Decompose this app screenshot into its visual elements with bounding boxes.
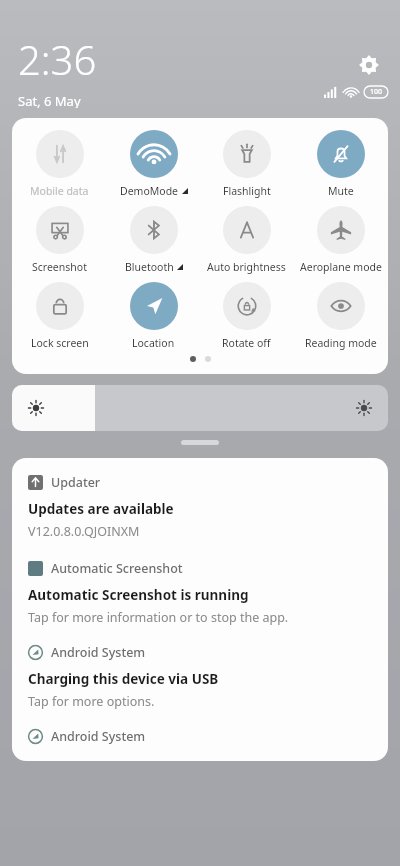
- button[interactable]: Reading mode: [295, 282, 386, 350]
- staticText: V12.0.8.0.QJOINXM: [28, 523, 140, 540]
- button[interactable]: Aeroplane mode: [295, 206, 386, 274]
- staticText: Mute: [328, 184, 354, 198]
- button[interactable]: Bluetooth: [108, 206, 199, 274]
- staticText: DemoMode: [120, 184, 179, 198]
- staticText: Location: [132, 336, 175, 350]
- button[interactable]: Auto brightness: [201, 206, 292, 274]
- button[interactable]: Mobile data: [14, 130, 105, 198]
- staticText: Lock screen: [31, 336, 89, 350]
- staticText: Automatic Screenshot is running: [28, 586, 249, 604]
- staticText: Sat, 6 May: [18, 92, 81, 108]
- button[interactable]: Rotate off: [201, 282, 292, 350]
- button[interactable]: Location: [108, 282, 199, 350]
- button[interactable]: DemoMode: [108, 130, 199, 198]
- staticText: Automatic Screenshot: [51, 560, 183, 577]
- button[interactable]: Flashlight: [201, 130, 292, 198]
- staticText: Bluetooth: [125, 260, 174, 274]
- button[interactable]: Mute: [295, 130, 386, 198]
- button[interactable]: Automatic Screenshot: [28, 560, 372, 626]
- button[interactable]: Updater: [28, 474, 372, 540]
- button[interactable]: Settings: [352, 48, 386, 82]
- staticText: Android System: [51, 644, 146, 661]
- button[interactable]: [12, 385, 388, 431]
- staticText: Rotate off: [222, 336, 271, 350]
- staticText: Updates are available: [28, 500, 174, 518]
- button[interactable]: Android System: [28, 644, 372, 710]
- button[interactable]: Lock screen: [14, 282, 105, 350]
- staticText: 2:36: [18, 32, 97, 86]
- staticText: Tap for more options.: [28, 693, 155, 710]
- button[interactable]: Screenshot: [14, 206, 105, 274]
- staticText: Android System: [51, 728, 146, 745]
- staticText: 100: [370, 87, 383, 97]
- staticText: Screenshot: [32, 260, 87, 274]
- staticText: Auto brightness: [207, 260, 286, 274]
- staticText: Reading mode: [305, 336, 377, 350]
- staticText: Tap for more information or to stop the …: [28, 609, 289, 626]
- staticText: Aeroplane mode: [300, 260, 382, 274]
- staticText: Charging this device via USB: [28, 670, 219, 688]
- staticText: Mobile data: [30, 184, 89, 198]
- staticText: Flashlight: [223, 184, 271, 198]
- staticText: Updater: [51, 474, 101, 491]
